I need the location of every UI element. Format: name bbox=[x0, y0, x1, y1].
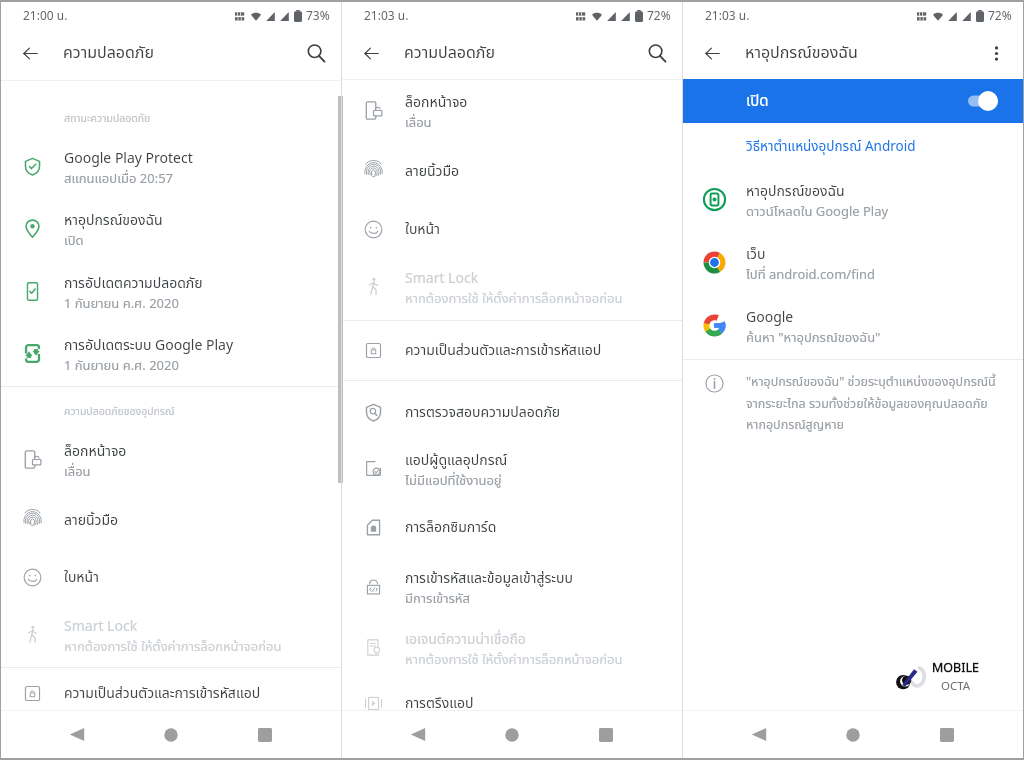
staticText: ดาวน์โหลดใน Google Play bbox=[746, 202, 889, 222]
button[interactable]: Back bbox=[30, 711, 124, 758]
button[interactable]: ล็อกหน้าจอ bbox=[342, 82, 682, 142]
staticText: หาอุปกรณ์ของฉัน bbox=[64, 210, 163, 231]
button[interactable]: Back bbox=[712, 711, 806, 758]
staticText: เลื่อน bbox=[405, 113, 432, 133]
staticText: 72% bbox=[988, 7, 1012, 25]
button[interactable]: More options bbox=[980, 37, 1013, 70]
button[interactable]: ล็อกหน้าจอ bbox=[1, 430, 341, 492]
staticText: Google bbox=[746, 307, 794, 328]
staticText: มีการเข้ารหัส bbox=[405, 589, 470, 609]
button[interactable]: Search bbox=[300, 37, 333, 70]
staticText: ความปลอดภัยของอุปกรณ์ bbox=[64, 404, 175, 420]
button[interactable]: การอัปเดตระบบ Google Play bbox=[1, 324, 341, 386]
staticText: ความเป็นส่วนตัวและการเข้ารหัสแอป bbox=[64, 683, 261, 704]
staticText: ไปที่ android.com/find bbox=[746, 265, 876, 285]
staticText: ค้นหา "หาอุปกรณ์ของฉัน" bbox=[746, 328, 881, 348]
staticText: การอัปเดตความปลอดภัย bbox=[64, 273, 203, 294]
button[interactable]: ลายนิ้วมือ bbox=[342, 142, 682, 200]
button[interactable]: Home bbox=[806, 711, 900, 758]
staticText: ใบหน้า bbox=[405, 219, 440, 240]
staticText: หากต้องการใช้ ให้ตั้งค่าการล็อกหน้าจอก่อ… bbox=[405, 650, 623, 670]
button[interactable]: การล็อกซิมการ์ด bbox=[342, 498, 682, 556]
staticText: ลายนิ้วมือ bbox=[64, 510, 119, 531]
staticText: MOBILE bbox=[932, 659, 979, 678]
staticText: ความปลอดภัย bbox=[63, 41, 155, 65]
button[interactable]: ลายนิ้วมือ bbox=[1, 492, 341, 549]
staticText: 72% bbox=[647, 7, 671, 25]
button[interactable]: Back bbox=[14, 37, 47, 70]
button[interactable]: Back bbox=[355, 37, 388, 70]
staticText: ใบหน้า bbox=[64, 567, 99, 588]
button[interactable]: Recent apps bbox=[900, 711, 994, 758]
staticText: การเข้ารหัสและข้อมูลเข้าสู่ระบบ bbox=[405, 568, 573, 589]
button[interactable]: ความเป็นส่วนตัวและการเข้ารหัสแอป bbox=[342, 321, 682, 380]
button[interactable]: ใบหน้า bbox=[342, 200, 682, 258]
button[interactable]: Recent apps bbox=[559, 711, 653, 758]
staticText: เว็บ bbox=[746, 244, 766, 265]
button[interactable]: การตรวจสอบความปลอดภัย bbox=[342, 381, 682, 443]
staticText: การตรวจสอบความปลอดภัย bbox=[405, 402, 561, 423]
button[interactable]: ใบหน้า bbox=[1, 549, 341, 606]
staticText: 21:03 น. bbox=[705, 7, 750, 25]
button[interactable]: Home bbox=[465, 711, 559, 758]
staticText: Smart Lock bbox=[64, 616, 138, 637]
button[interactable]: Recent apps bbox=[218, 711, 312, 758]
button[interactable]: Back bbox=[696, 37, 729, 70]
staticText: ความเป็นส่วนตัวและการเข้ารหัสแอป bbox=[405, 340, 602, 361]
staticText: สถานะความปลอดภัย bbox=[64, 111, 151, 127]
button[interactable]: เว็บ bbox=[683, 233, 1023, 296]
button[interactable]: ความเป็นส่วนตัวและการเข้ารหัสแอป bbox=[1, 668, 341, 718]
button[interactable]: เอเจนต์ความน่าเชื่อถือ bbox=[342, 621, 682, 678]
staticText: เอเจนต์ความน่าเชื่อถือ bbox=[405, 629, 526, 650]
staticText: หาอุปกรณ์ของฉัน bbox=[746, 181, 845, 202]
button[interactable]: หาอุปกรณ์ของฉัน bbox=[1, 199, 341, 262]
button[interactable]: Home bbox=[124, 711, 218, 758]
button[interactable]: Google Play Protect bbox=[1, 137, 341, 199]
staticText: การอัปเดตระบบ Google Play bbox=[64, 335, 234, 356]
staticText: ล็อกหน้าจอ bbox=[64, 441, 127, 462]
staticText: ความปลอดภัย bbox=[404, 41, 496, 65]
staticText: ไม่มีแอปที่ใช้งานอยู่ bbox=[405, 471, 502, 491]
staticText: การล็อกซิมการ์ด bbox=[405, 517, 497, 538]
button[interactable]: Smart Lock bbox=[1, 606, 341, 667]
button[interactable]: เปิด bbox=[683, 79, 1023, 123]
button[interactable]: การเข้ารหัสและข้อมูลเข้าสู่ระบบ bbox=[342, 556, 682, 621]
staticText: เปิด bbox=[746, 90, 968, 113]
staticText: ล็อกหน้าจอ bbox=[405, 92, 468, 113]
button[interactable]: Search bbox=[641, 37, 674, 70]
staticText: 1 กันยายน ค.ศ. 2020 bbox=[64, 294, 179, 314]
button[interactable]: Smart Lock bbox=[342, 258, 682, 318]
staticText: 21:03 น. bbox=[364, 7, 409, 25]
staticText: 1 กันยายน ค.ศ. 2020 bbox=[64, 356, 179, 376]
staticText: Google Play Protect bbox=[64, 148, 193, 169]
staticText: แอปผู้ดูแลอุปกรณ์ bbox=[405, 450, 508, 471]
staticText: การตรึงแอป bbox=[405, 693, 474, 714]
button[interactable]: การอัปเดตความปลอดภัย bbox=[1, 262, 341, 324]
button[interactable]: วิธีหาตำแหน่งอุปกรณ์ Android bbox=[746, 137, 916, 157]
button[interactable]: แอปผู้ดูแลอุปกรณ์ bbox=[342, 443, 682, 498]
staticText: สแกนแอปเมื่อ 20:57 bbox=[64, 169, 174, 189]
staticText: ลายนิ้วมือ bbox=[405, 161, 460, 182]
button[interactable]: Google bbox=[683, 296, 1023, 359]
button[interactable]: หาอุปกรณ์ของฉัน bbox=[683, 170, 1023, 233]
staticText: "หาอุปกรณ์ของฉัน" ช่วยระบุตำแหน่งของอุปก… bbox=[746, 373, 1019, 435]
staticText: เลื่อน bbox=[64, 462, 91, 482]
staticText: หากต้องการใช้ ให้ตั้งค่าการล็อกหน้าจอก่อ… bbox=[405, 289, 623, 309]
button[interactable]: การตรึงแอป bbox=[342, 678, 682, 728]
staticText: 21:00 น. bbox=[23, 7, 68, 25]
button[interactable]: Back bbox=[371, 711, 465, 758]
staticText: 73% bbox=[306, 7, 330, 25]
staticText: หาอุปกรณ์ของฉัน bbox=[745, 41, 858, 65]
staticText: หากต้องการใช้ ให้ตั้งค่าการล็อกหน้าจอก่อ… bbox=[64, 637, 282, 657]
staticText: Smart Lock bbox=[405, 268, 479, 289]
staticText: OCTA bbox=[941, 678, 971, 695]
staticText: เปิด bbox=[64, 231, 84, 251]
